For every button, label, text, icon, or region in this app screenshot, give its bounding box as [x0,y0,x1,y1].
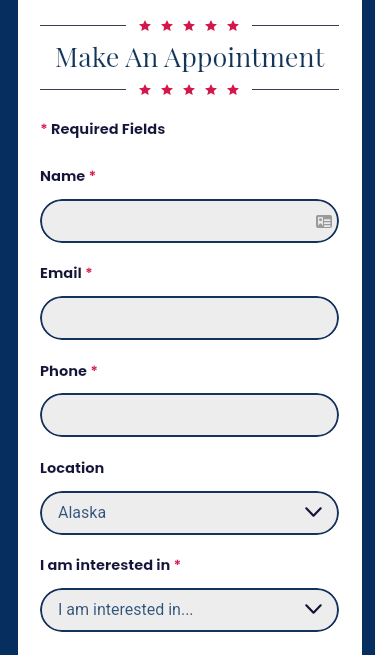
other: Open list [305,604,322,614]
button[interactable]: I am interested in... [40,588,339,632]
staticText: Name * [40,166,97,186]
staticText: Phone * [40,361,98,381]
button[interactable]: Autofill contact card [40,199,339,243]
staticText: I am interested in * [40,555,182,575]
button[interactable] [40,393,339,437]
staticText: * Required Fields [40,119,166,139]
button[interactable]: Alaska [40,491,339,535]
other: Autofill contact card [316,215,332,228]
other: Open list [305,507,322,517]
staticText: Alaska [58,503,107,522]
button[interactable] [40,296,339,340]
staticText: Make An Appointment [40,38,339,74]
staticText: I am interested in... [58,600,194,619]
staticText: Location [40,458,105,478]
staticText: Email * [40,263,93,283]
